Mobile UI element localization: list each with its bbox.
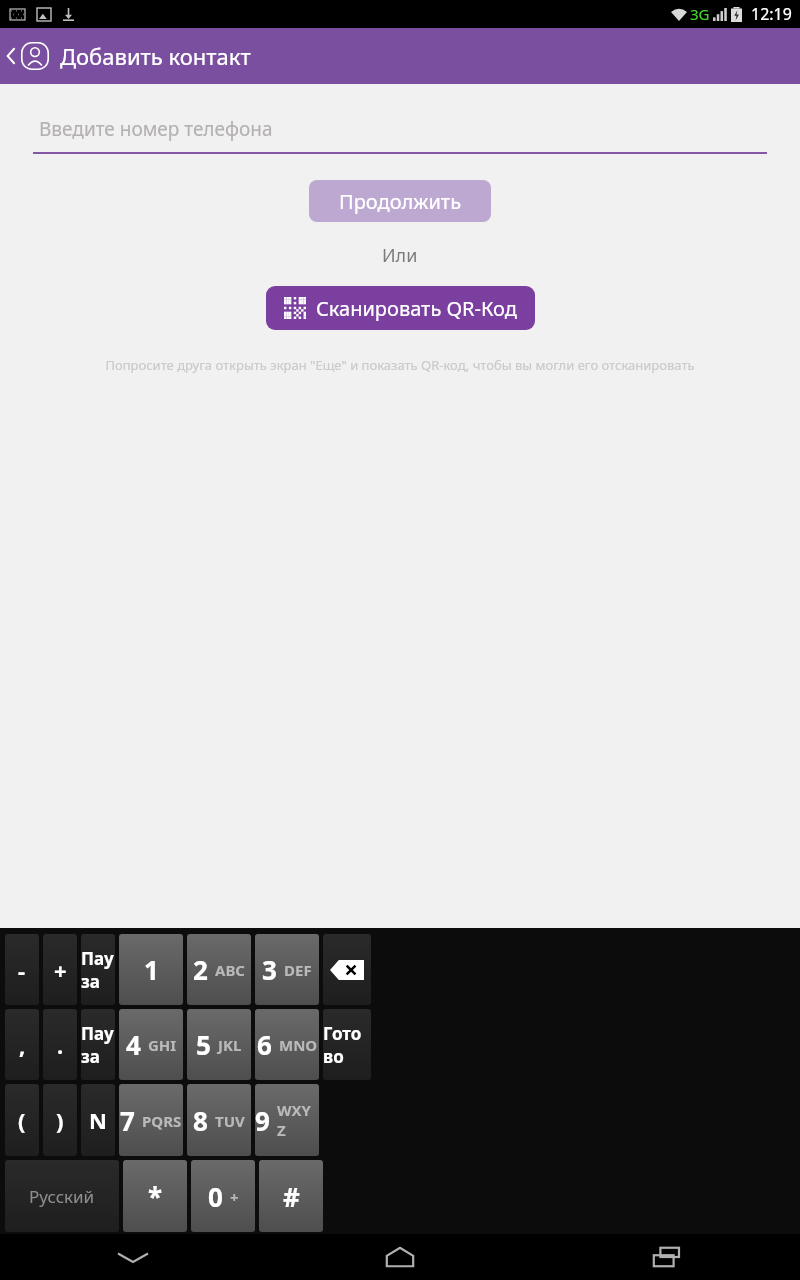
- staticText: Или: [382, 243, 418, 268]
- staticText: +: [54, 955, 67, 985]
- staticText: Продолжить: [339, 188, 462, 215]
- button[interactable]: 8: [187, 1084, 251, 1156]
- button[interactable]: Home: [266, 1234, 533, 1280]
- staticText: ABC: [215, 960, 245, 980]
- staticText: N: [89, 1105, 107, 1135]
- staticText: TUV: [215, 1111, 245, 1131]
- button[interactable]: 4: [119, 1009, 183, 1080]
- staticText: 6: [257, 1027, 272, 1062]
- button[interactable]: 1: [119, 934, 183, 1005]
- staticText: Русский: [29, 1185, 95, 1208]
- staticText: WXYZ: [277, 1100, 319, 1140]
- button[interactable]: 6: [255, 1009, 319, 1080]
- button[interactable]: 7: [119, 1084, 183, 1156]
- button[interactable]: 3: [255, 934, 319, 1005]
- staticText: Пауза: [81, 1022, 115, 1068]
- button[interactable]: 5: [187, 1009, 251, 1080]
- staticText: Введите номер телефона: [39, 116, 273, 142]
- button[interactable]: Пауза: [81, 934, 115, 1005]
- button[interactable]: 0: [191, 1160, 255, 1232]
- button[interactable]: Hide keyboard: [0, 1234, 266, 1280]
- staticText: 3G: [690, 4, 710, 24]
- staticText: GHI: [148, 1035, 177, 1055]
- button[interactable]: ): [43, 1084, 77, 1156]
- button[interactable]: N: [81, 1084, 115, 1156]
- button[interactable]: Пауза: [81, 1009, 115, 1080]
- button[interactable]: 9: [255, 1084, 319, 1156]
- staticText: 12:19: [751, 3, 792, 25]
- staticText: ,: [19, 1030, 26, 1060]
- staticText: *: [148, 1179, 163, 1214]
- button[interactable]: Русский: [5, 1160, 119, 1232]
- staticText: Попросите друга открыть экран "Еще" и по…: [105, 356, 695, 374]
- staticText: Сканировать QR-Код: [316, 295, 517, 322]
- staticText: Пауза: [81, 947, 115, 993]
- staticText: MNO: [279, 1035, 318, 1055]
- button[interactable]: Recent apps: [533, 1234, 800, 1280]
- staticText: 9: [255, 1103, 270, 1138]
- staticText: #: [283, 1179, 300, 1214]
- staticText: JKL: [218, 1035, 242, 1055]
- button[interactable]: Back: [0, 28, 54, 84]
- staticText: 8: [193, 1103, 208, 1138]
- staticText: 3: [262, 952, 277, 987]
- staticText: 2: [193, 952, 208, 987]
- button[interactable]: ,: [5, 1009, 39, 1080]
- staticText: Добавить контакт: [60, 41, 251, 71]
- staticText: .: [57, 1030, 64, 1060]
- button[interactable]: #: [259, 1160, 323, 1232]
- staticText: (: [18, 1105, 26, 1135]
- button[interactable]: Сканировать QR-Код: [266, 286, 535, 330]
- staticText: 1: [144, 952, 159, 987]
- button[interactable]: +: [43, 934, 77, 1005]
- staticText: DEF: [284, 960, 312, 980]
- button[interactable]: Продолжить: [309, 180, 491, 222]
- button[interactable]: -: [5, 934, 39, 1005]
- staticText: -: [18, 955, 26, 985]
- button[interactable]: *: [123, 1160, 187, 1232]
- staticText: Готово: [323, 1022, 371, 1068]
- button[interactable]: (: [5, 1084, 39, 1156]
- button[interactable]: Backspace: [323, 934, 371, 1005]
- staticText: 0: [208, 1179, 223, 1214]
- button[interactable]: 2: [187, 934, 251, 1005]
- staticText: 4: [126, 1027, 141, 1062]
- staticText: 5: [196, 1027, 211, 1062]
- staticText: 7: [120, 1103, 135, 1138]
- staticText: PQRS: [142, 1111, 182, 1131]
- button[interactable]: .: [43, 1009, 77, 1080]
- staticText: ): [56, 1105, 64, 1135]
- staticText: +: [230, 1187, 239, 1207]
- button[interactable]: Готово: [323, 1009, 371, 1080]
